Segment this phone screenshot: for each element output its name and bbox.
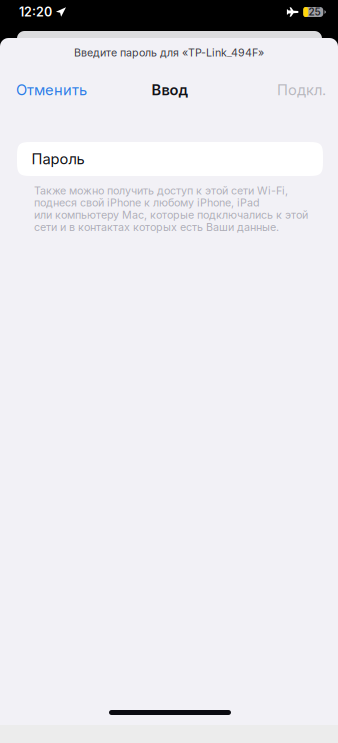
staticText: 25 — [308, 6, 320, 18]
staticText: Пароль — [31, 150, 84, 168]
staticText: 12:20 — [19, 4, 52, 20]
staticText: Ввод — [151, 81, 188, 99]
staticText: Введите пароль для «TP-Link_494F» — [74, 46, 264, 59]
button[interactable]: Пароль — [17, 142, 323, 176]
button[interactable]: Подкл. — [266, 77, 326, 103]
staticText: сети и в контактах которых есть Ваши дан… — [34, 221, 279, 234]
staticText: Отменить — [16, 81, 87, 99]
staticText: Подкл. — [277, 81, 326, 99]
staticText: или компьютеру Mac, которые подключались… — [34, 208, 308, 221]
staticText: поднеся свой iPhone к любому iPhone, iPa… — [34, 196, 260, 209]
staticText: Также можно получить доступ к этой сети … — [34, 184, 288, 197]
button[interactable]: Отменить — [16, 77, 102, 103]
